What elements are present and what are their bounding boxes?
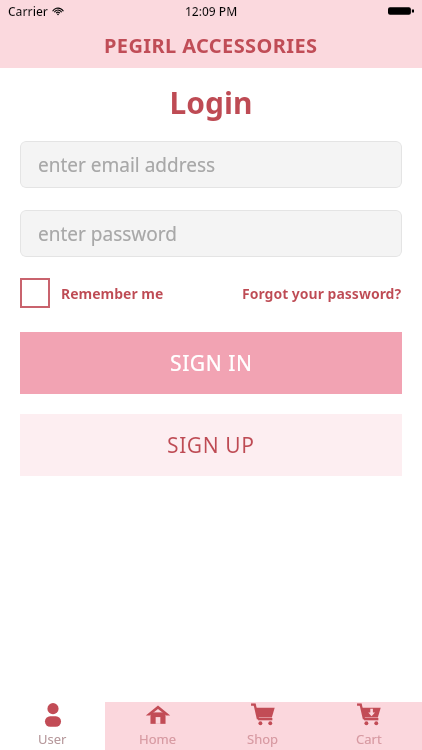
button[interactable]: SIGN UP xyxy=(20,414,402,476)
button[interactable]: User xyxy=(0,699,105,750)
staticText: SIGN IN xyxy=(170,349,253,378)
button[interactable]: Shop xyxy=(210,699,316,750)
other: Cart xyxy=(356,702,382,728)
staticText: SIGN UP xyxy=(167,431,255,460)
other: User xyxy=(40,702,66,728)
staticText: 12:09 PM xyxy=(185,3,238,19)
staticText: Remember me xyxy=(61,284,164,303)
staticText: Home xyxy=(139,730,176,748)
button[interactable]: SIGN IN xyxy=(20,332,402,394)
button[interactable]: enter password xyxy=(20,210,402,257)
staticText: enter email address xyxy=(38,152,216,178)
staticText: User xyxy=(38,730,67,748)
staticText: Forgot your password? xyxy=(242,284,402,303)
staticText: Shop xyxy=(247,730,279,748)
staticText: Cart xyxy=(356,730,382,748)
button[interactable]: Remember me checkbox xyxy=(20,278,164,308)
other: Remember me checkbox xyxy=(20,278,50,308)
button[interactable]: Home xyxy=(105,699,210,750)
other: Home xyxy=(145,702,171,728)
staticText: PEGIRL ACCESSORIES xyxy=(104,32,318,59)
staticText: Login xyxy=(0,82,422,123)
button[interactable]: Cart xyxy=(316,699,422,750)
staticText: Carrier xyxy=(8,3,48,19)
staticText: enter password xyxy=(38,221,177,247)
button[interactable]: Forgot your password? xyxy=(242,284,402,303)
button[interactable]: enter email address xyxy=(20,141,402,188)
other: Shop xyxy=(250,702,276,728)
